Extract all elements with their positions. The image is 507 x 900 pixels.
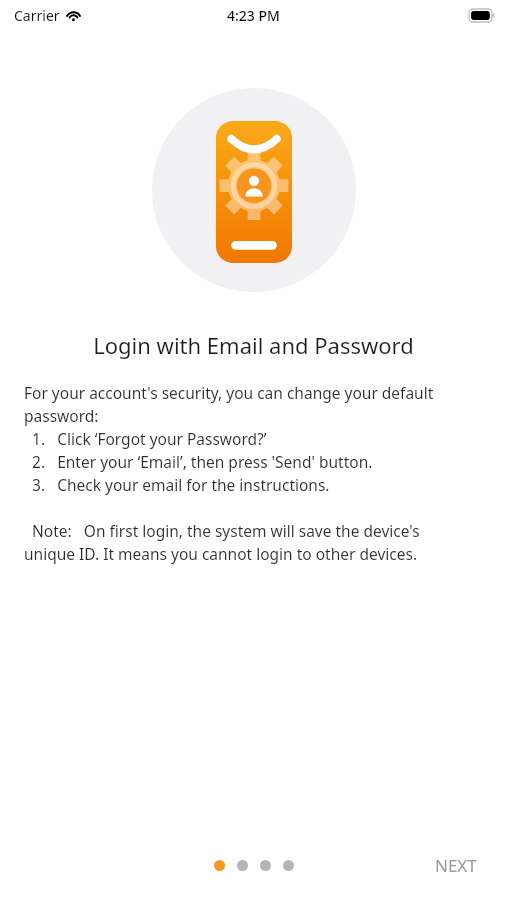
button[interactable]: NEXT bbox=[423, 846, 489, 885]
staticText: For your account's security, you can cha… bbox=[24, 382, 487, 565]
button[interactable] bbox=[260, 860, 271, 871]
staticText: 4:23 PM bbox=[227, 6, 280, 25]
button[interactable] bbox=[283, 860, 294, 871]
staticText: NEXT bbox=[435, 854, 477, 877]
button[interactable] bbox=[214, 860, 225, 871]
button[interactable] bbox=[237, 860, 248, 871]
staticText: Login with Email and Password bbox=[0, 330, 507, 360]
staticText: Carrier bbox=[14, 6, 60, 25]
